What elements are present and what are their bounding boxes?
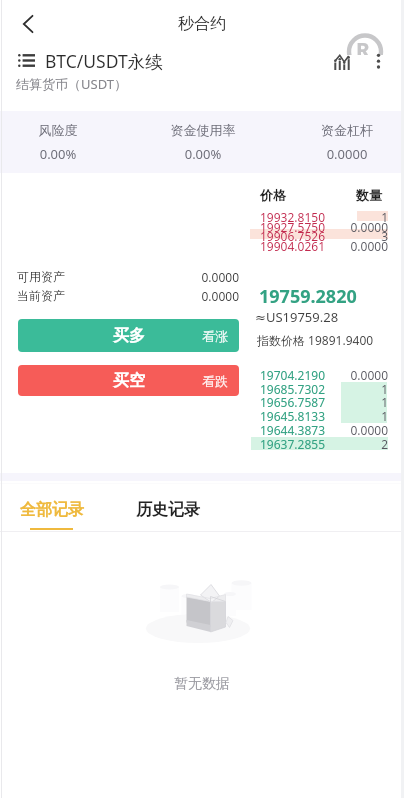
staticText: 19656.7587 xyxy=(260,394,325,410)
button[interactable]: 全部记录 xyxy=(12,492,90,532)
staticText: 19906.7526 xyxy=(260,228,325,244)
button[interactable]: More options xyxy=(366,47,392,73)
staticText: 秒合约 xyxy=(0,14,404,34)
staticText: 19644.3873 xyxy=(260,422,325,438)
staticText: 0.0000 xyxy=(260,367,388,383)
staticText: 19759.2820 xyxy=(259,284,357,309)
staticText: 19704.2190 xyxy=(260,367,325,383)
button[interactable]: 买空 xyxy=(18,365,239,396)
staticText: 2 xyxy=(260,436,388,452)
staticText: 指数价格 19891.9400 xyxy=(257,332,374,348)
staticText: 0.0000 xyxy=(260,422,388,438)
staticText: 价格 xyxy=(260,187,286,203)
staticText: 19645.8133 xyxy=(260,408,325,424)
staticText: R xyxy=(356,36,370,55)
staticText: 19932.8150 xyxy=(260,209,325,225)
staticText: 19927.5750 xyxy=(260,219,325,235)
staticText: 资金杠杆 xyxy=(287,122,404,138)
staticText: 0.00% xyxy=(0,145,118,163)
staticText: 0.0000 xyxy=(260,219,388,235)
staticText: 0.0000 xyxy=(287,145,404,163)
staticText: 19904.0261 xyxy=(260,238,325,254)
button[interactable]: Back xyxy=(11,7,45,41)
button[interactable]: 历史记录 xyxy=(128,492,206,524)
staticText: 全部记录 xyxy=(20,500,84,520)
staticText: 1 xyxy=(260,408,388,424)
staticText: 19637.2855 xyxy=(260,436,325,452)
staticText: 0.00% xyxy=(143,145,263,163)
staticText: 资金使用率 xyxy=(143,122,263,138)
button[interactable]: Chart xyxy=(328,47,354,73)
staticText: 1 xyxy=(260,381,388,397)
staticText: 0.0000 xyxy=(260,238,388,254)
staticText: ≈US19759.28 xyxy=(255,308,339,326)
staticText: 0.0000 xyxy=(17,288,239,304)
button[interactable]: 买多 xyxy=(18,319,239,352)
staticText: 数量 xyxy=(356,187,382,203)
staticText: 风险度 xyxy=(0,122,118,138)
staticText: 当前资产 xyxy=(17,288,65,303)
staticText: BTC/USDT永续 xyxy=(45,49,163,73)
staticText: 3 xyxy=(260,228,388,244)
staticText: 可用资产 xyxy=(17,269,65,284)
staticText: 买多 xyxy=(113,326,145,346)
staticText: 历史记录 xyxy=(136,500,200,520)
staticText: 看跌 xyxy=(202,373,228,389)
staticText: 1 xyxy=(260,394,388,410)
staticText: 结算货币（USDT） xyxy=(16,75,127,93)
staticText: 买空 xyxy=(113,371,145,391)
staticText: 暂无数据 xyxy=(0,675,404,693)
staticText: 19685.7302 xyxy=(260,381,325,397)
staticText: 0.0000 xyxy=(17,269,239,285)
staticText: 1 xyxy=(260,209,388,225)
staticText: 看涨 xyxy=(202,328,228,344)
